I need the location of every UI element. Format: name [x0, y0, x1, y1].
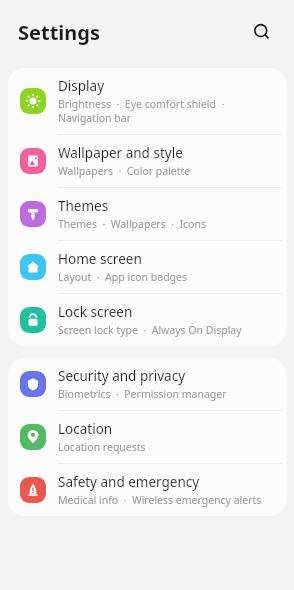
button[interactable]: Search [244, 14, 280, 50]
staticText: Display [58, 77, 105, 95]
staticText: Location [58, 420, 113, 438]
staticText: Brightness · Eye comfort shield · Naviga… [58, 97, 276, 125]
staticText: Lock screen [58, 303, 133, 321]
button[interactable]: Display [8, 68, 286, 134]
button[interactable]: Safety and emergency [8, 464, 286, 516]
staticText: Biometrics · Permission manager [58, 387, 227, 401]
staticText: Location requests [58, 440, 146, 454]
staticText: Security and privacy [58, 367, 186, 385]
staticText: Medical info · Wireless emergency alerts [58, 493, 262, 507]
button[interactable]: Home screen [8, 241, 286, 293]
staticText: Settings [18, 19, 100, 46]
staticText: Wallpaper and style [58, 144, 183, 162]
staticText: Home screen [58, 250, 142, 268]
staticText: Layout · App icon badges [58, 270, 188, 284]
staticText: Themes [58, 197, 109, 215]
button[interactable]: Themes [8, 188, 286, 240]
staticText: Themes · Wallpapers · Icons [58, 217, 206, 231]
staticText: Wallpapers · Color palette [58, 164, 191, 178]
button[interactable]: Security and privacy [8, 358, 286, 410]
button[interactable]: Lock screen [8, 294, 286, 346]
staticText: Screen lock type · Always On Display [58, 323, 242, 337]
button[interactable]: Location [8, 411, 286, 463]
staticText: Safety and emergency [58, 473, 200, 491]
button[interactable]: Wallpaper and style [8, 135, 286, 187]
